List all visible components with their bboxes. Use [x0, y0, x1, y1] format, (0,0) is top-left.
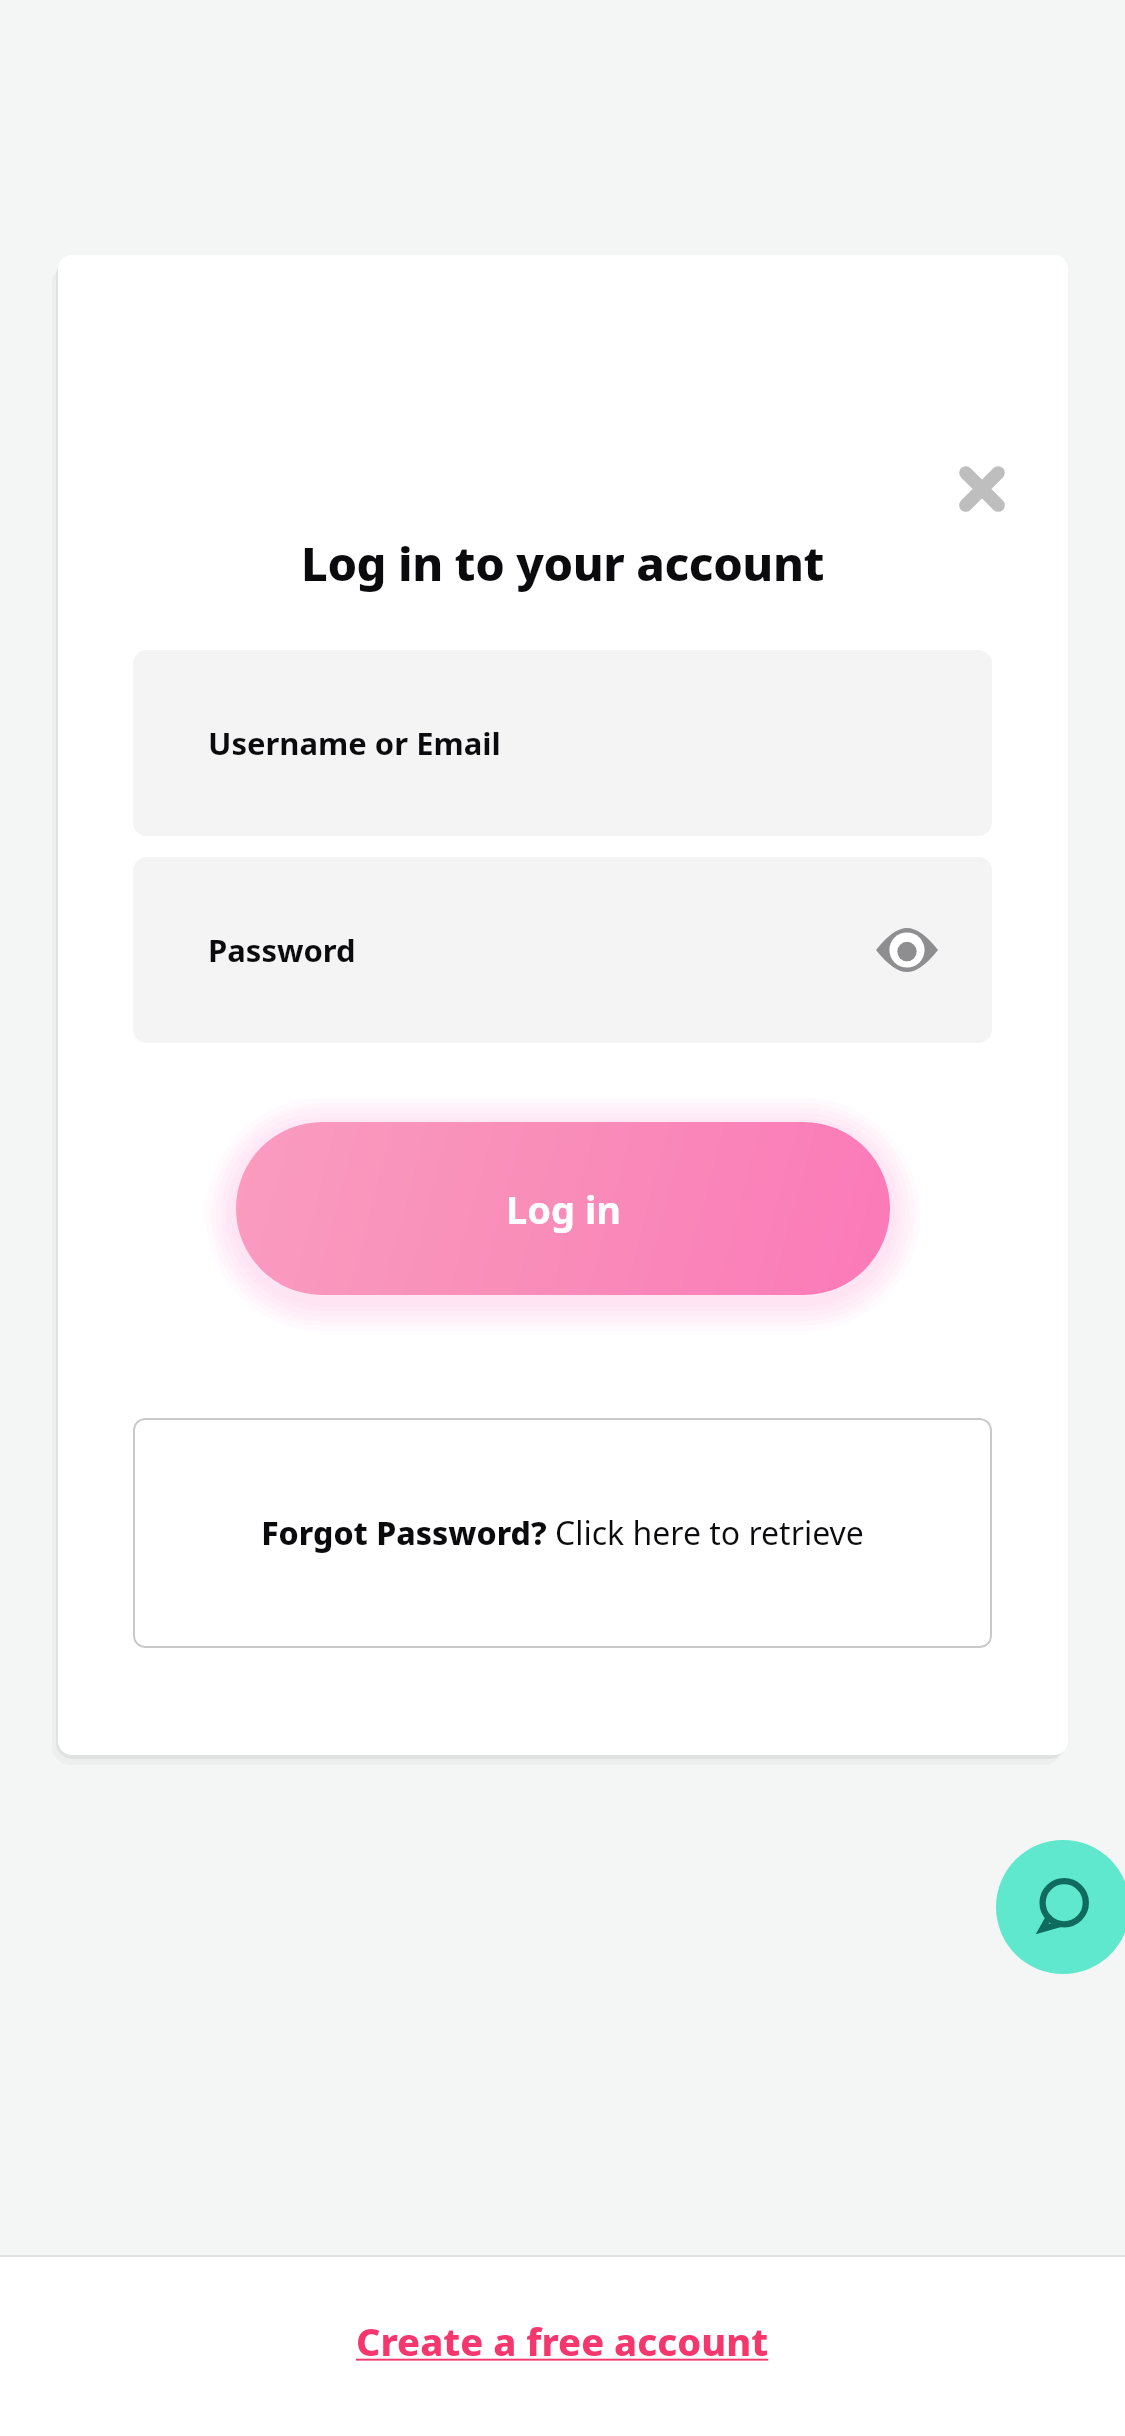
- button[interactable]: Password: [133, 857, 992, 1043]
- staticText: Password: [208, 929, 356, 971]
- staticText: Username or Email: [208, 722, 501, 764]
- button[interactable]: Chat support: [996, 1840, 1125, 1974]
- staticText: Create a free account: [356, 2315, 769, 2367]
- staticText: Log in: [506, 1183, 621, 1235]
- staticText: Forgot Password? Click here to retrieve: [261, 1511, 864, 1555]
- button[interactable]: Close: [930, 437, 1034, 541]
- button[interactable]: Log in: [236, 1122, 890, 1295]
- button[interactable]: Username or Email: [133, 650, 992, 836]
- button[interactable]: Show password: [864, 907, 950, 993]
- staticText: Log in to your account: [301, 531, 825, 595]
- button[interactable]: Forgot Password? Click here to retrieve: [133, 1418, 992, 1648]
- button[interactable]: Create a free account: [340, 2307, 785, 2375]
